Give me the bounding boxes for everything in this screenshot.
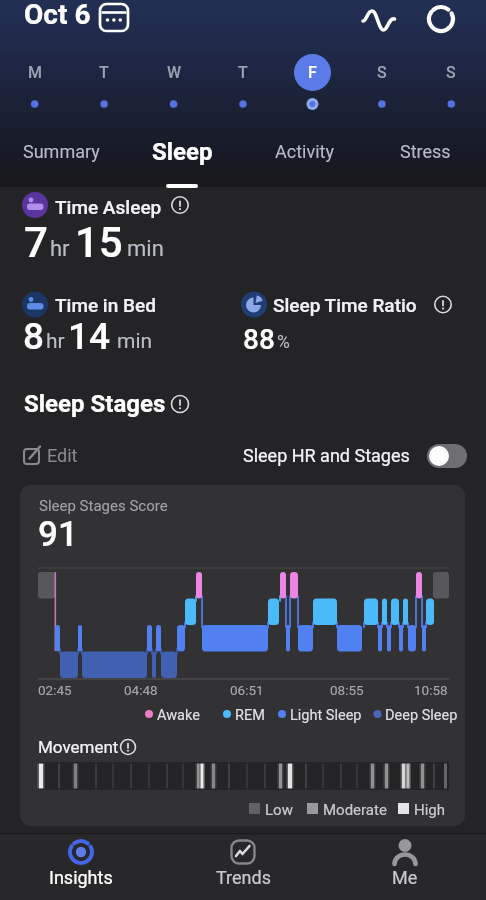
button[interactable]: S xyxy=(352,50,412,112)
button[interactable]: Activity xyxy=(244,138,364,188)
button[interactable]: T xyxy=(74,50,134,112)
staticText: T xyxy=(99,63,109,82)
staticText: min xyxy=(117,329,153,354)
button[interactable] xyxy=(427,444,467,468)
staticText: Sleep xyxy=(152,138,213,166)
staticText: 91 xyxy=(38,514,78,555)
button[interactable] xyxy=(356,2,400,40)
staticText: hr xyxy=(46,329,65,354)
staticText: High xyxy=(414,801,446,819)
staticText: S xyxy=(446,63,456,82)
staticText: Trends xyxy=(216,867,271,888)
staticText: Movement xyxy=(38,737,119,757)
staticText: min xyxy=(127,236,164,262)
staticText: 14 xyxy=(68,315,111,358)
button[interactable] xyxy=(20,440,90,470)
staticText: Stress xyxy=(400,141,451,162)
button[interactable] xyxy=(20,485,465,826)
staticText: Moderate xyxy=(323,801,387,819)
staticText: % xyxy=(277,332,290,353)
staticText: W xyxy=(167,63,182,82)
staticText: 88 xyxy=(243,323,275,356)
staticText: 8 xyxy=(23,315,45,358)
staticText: Insights xyxy=(49,867,113,888)
button[interactable]: Trends xyxy=(173,834,313,900)
staticText: Sleep Time Ratio xyxy=(273,294,417,316)
staticText: M xyxy=(28,63,43,82)
staticText: Summary xyxy=(23,141,100,162)
button[interactable]: F xyxy=(282,50,342,112)
staticText: 06:51 xyxy=(230,682,264,698)
staticText: F xyxy=(308,63,317,82)
staticText: REM xyxy=(235,707,265,724)
button[interactable]: Insights xyxy=(11,834,151,900)
button[interactable]: Sleep xyxy=(122,138,242,188)
staticText: Time in Bed xyxy=(55,294,156,316)
button[interactable]: Summary xyxy=(1,138,121,188)
staticText: Deep Sleep xyxy=(385,707,458,724)
staticText: 15 xyxy=(75,218,123,267)
staticText: Sleep Stages Score xyxy=(39,497,168,515)
staticText: Low xyxy=(265,801,293,819)
staticText: Sleep HR and Stages xyxy=(243,445,410,466)
staticText: hr xyxy=(50,236,70,262)
staticText: Sleep Stages xyxy=(24,390,166,418)
staticText: Awake xyxy=(157,707,200,724)
button[interactable]: Stress xyxy=(365,138,485,188)
staticText: Activity xyxy=(275,141,334,162)
staticText: 08:55 xyxy=(330,682,364,698)
staticText: T xyxy=(238,63,248,82)
button[interactable]: T xyxy=(213,50,273,112)
staticText: Light Sleep xyxy=(290,707,362,724)
button[interactable]: M xyxy=(5,50,65,112)
staticText: 10:58 xyxy=(414,682,448,698)
staticText: Me xyxy=(392,867,418,888)
button[interactable]: Edit xyxy=(0,0,31,21)
button[interactable]: S xyxy=(421,50,481,112)
button[interactable]: Oct 6 xyxy=(0,0,67,33)
button[interactable]: Me xyxy=(335,834,475,900)
button[interactable] xyxy=(418,0,464,42)
staticText: 7 xyxy=(24,218,48,267)
staticText: Time Asleep xyxy=(55,196,162,218)
staticText: 02:45 xyxy=(38,682,72,698)
staticText: S xyxy=(377,63,387,82)
staticText: 04:48 xyxy=(124,682,158,698)
button[interactable]: W xyxy=(144,50,204,112)
